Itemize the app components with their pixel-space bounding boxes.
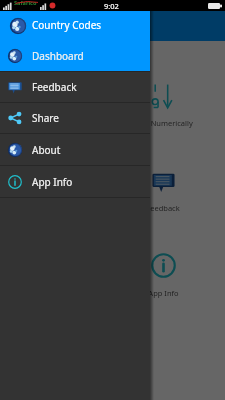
button[interactable]: About bbox=[0, 134, 150, 165]
button[interactable]: App Info bbox=[0, 166, 150, 197]
button[interactable]: Sort Alphabetically bbox=[14, 71, 110, 128]
button[interactable]: Feedback bbox=[0, 72, 150, 102]
staticText: Share bbox=[32, 111, 59, 125]
staticText: Country Codes bbox=[32, 18, 102, 32]
staticText: App Info bbox=[32, 175, 73, 189]
button[interactable]: Sort Numerically bbox=[115, 71, 211, 128]
button[interactable]: Dashboard bbox=[0, 41, 150, 71]
staticText: Sort Alphabetically bbox=[29, 118, 95, 128]
staticText: Safaricom bbox=[14, 0, 39, 10]
button[interactable]: Country Codes bbox=[0, 11, 150, 41]
button[interactable]: Share bbox=[0, 103, 150, 133]
staticText: Sort Numerically bbox=[134, 118, 193, 128]
staticText: Feedback bbox=[32, 80, 77, 94]
button[interactable]: App Info bbox=[115, 241, 211, 298]
staticText: About bbox=[32, 143, 61, 157]
staticText: Dashboard bbox=[32, 49, 84, 63]
staticText: 9:02 bbox=[104, 1, 119, 11]
button[interactable]: Share bbox=[14, 160, 110, 213]
staticText: App Info bbox=[148, 288, 179, 298]
staticText: Feedback bbox=[146, 203, 180, 213]
staticText: Country Codes bbox=[32, 18, 102, 32]
button[interactable]: Feedback bbox=[115, 158, 211, 213]
